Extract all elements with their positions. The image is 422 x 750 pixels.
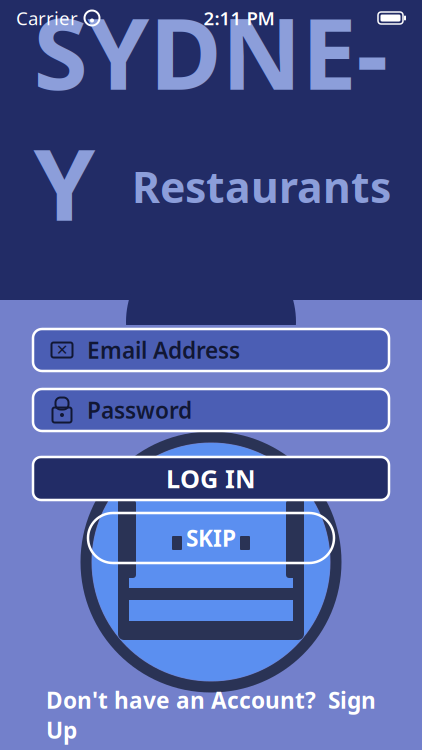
staticText: SKIP	[186, 523, 236, 553]
staticText: Password	[87, 395, 192, 425]
button[interactable]: ✕	[33, 329, 389, 371]
button[interactable]: SKIP	[88, 513, 334, 563]
button[interactable]: Password	[33, 389, 389, 431]
button[interactable]: Don't have an Account? Sign Up	[31, 702, 391, 728]
staticText: SYDNEY	[33, 0, 388, 248]
staticText: Restaurants	[132, 158, 391, 215]
staticText: Don't have an Account? Sign Up	[46, 685, 376, 745]
staticText: Carrier	[16, 6, 78, 30]
staticText: ✕	[56, 342, 68, 358]
button[interactable]: LOG IN	[33, 457, 389, 500]
staticText: 2:11 PM	[203, 6, 274, 30]
staticText: Email Address	[87, 335, 240, 365]
staticText: LOG IN	[166, 462, 256, 495]
staticText: SYDNEY	[33, 0, 388, 248]
